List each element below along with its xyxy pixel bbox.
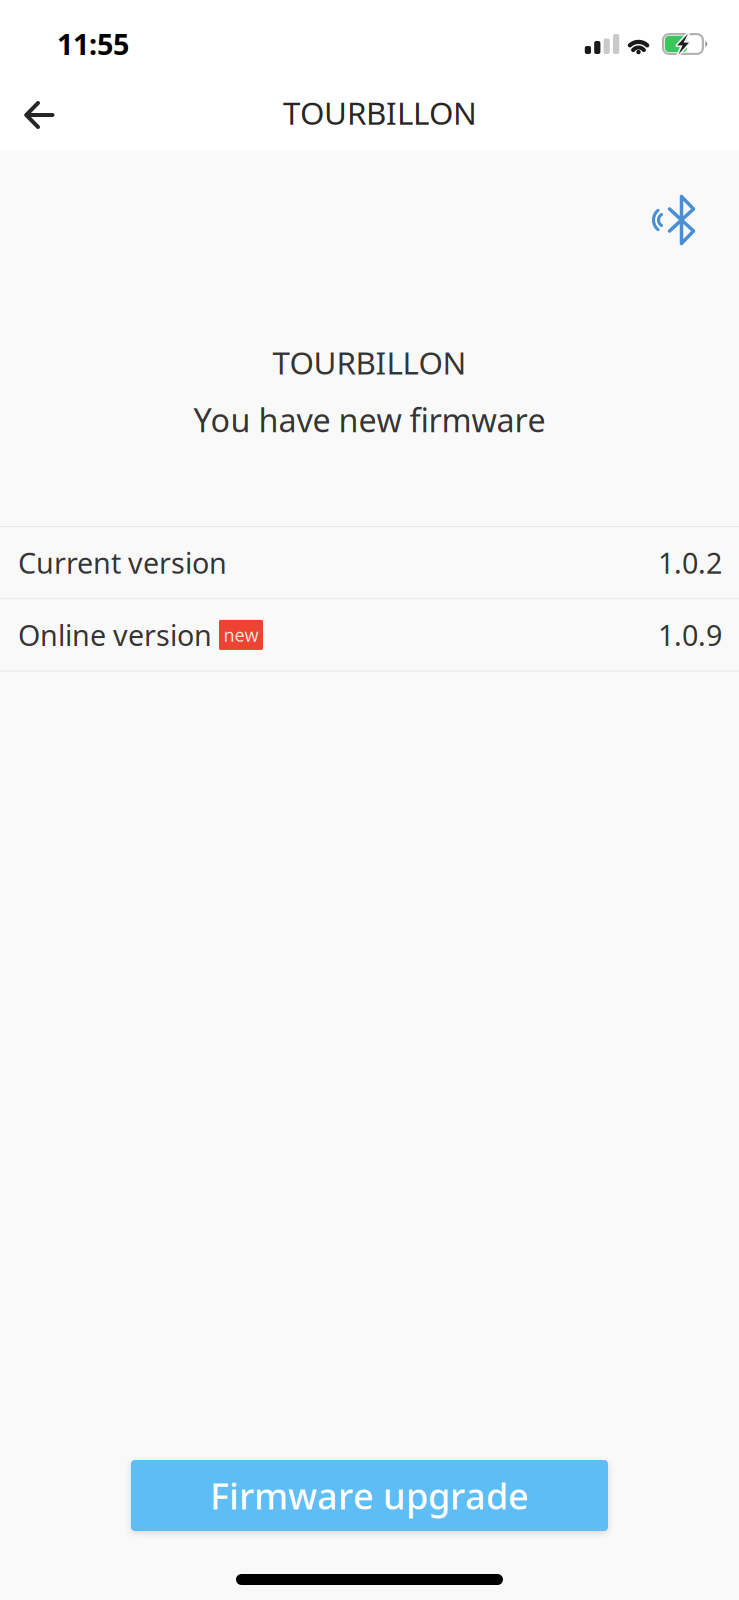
staticText: new (223, 622, 258, 647)
button[interactable]: Back (0, 84, 81, 145)
staticText: 11:55 (57, 24, 129, 63)
button[interactable]: Current version (0, 527, 739, 599)
staticText: TOURBILLON (272, 341, 466, 384)
staticText: TOURBILLON (283, 91, 477, 134)
staticText: Firmware upgrade (210, 1471, 529, 1520)
button[interactable]: Firmware upgrade (131, 1460, 608, 1531)
staticText: Current version (18, 543, 227, 582)
staticText: 1.0.9 (658, 615, 722, 654)
staticText: You have new firmware (193, 398, 545, 442)
staticText: Online version (18, 615, 212, 654)
button[interactable]: Online version (0, 599, 739, 672)
staticText: 1.0.2 (658, 543, 722, 582)
